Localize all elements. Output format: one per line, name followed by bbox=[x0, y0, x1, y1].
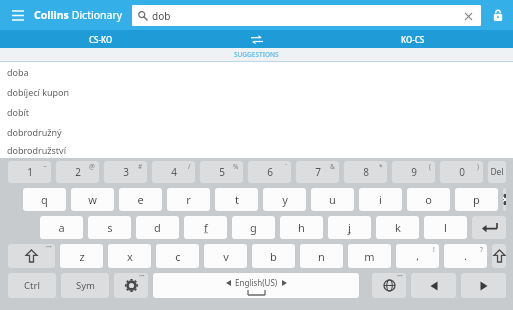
staticText: c bbox=[175, 249, 181, 264]
button[interactable]: Sym bbox=[61, 273, 109, 298]
button[interactable]: CS-KO bbox=[0, 30, 201, 48]
staticText: o bbox=[425, 192, 432, 207]
button[interactable]: Del bbox=[488, 161, 506, 183]
button[interactable]: Swap languages bbox=[201, 30, 312, 48]
staticText: ••• bbox=[397, 273, 403, 280]
button[interactable]: dobít bbox=[0, 102, 513, 122]
staticText: ( bbox=[429, 162, 431, 171]
button[interactable]: o bbox=[407, 188, 450, 211]
button[interactable]: t bbox=[215, 188, 258, 211]
button[interactable]: 2 bbox=[56, 161, 99, 183]
button[interactable]: b bbox=[252, 244, 295, 268]
button[interactable]: 5 bbox=[200, 161, 243, 183]
staticText: f bbox=[204, 220, 208, 235]
button[interactable]: Ctrl bbox=[8, 273, 56, 298]
staticText: Collins bbox=[34, 8, 69, 22]
button[interactable]: 0 bbox=[440, 161, 483, 183]
button[interactable]: c bbox=[156, 244, 199, 268]
button[interactable]: m bbox=[348, 244, 391, 268]
button[interactable]: Right bbox=[461, 273, 506, 298]
staticText: v bbox=[223, 249, 229, 264]
staticText: u bbox=[329, 192, 336, 207]
button[interactable]: 8 bbox=[344, 161, 387, 183]
button[interactable]: e bbox=[119, 188, 162, 211]
staticText: 8 bbox=[363, 165, 369, 179]
button[interactable]: f bbox=[184, 216, 227, 239]
button[interactable]: q bbox=[23, 188, 66, 211]
staticText: p bbox=[473, 192, 480, 207]
button[interactable]: Shift bbox=[8, 244, 55, 268]
staticText: dobrodružný bbox=[7, 126, 62, 138]
button[interactable]: Clear bbox=[461, 9, 475, 23]
staticText: ~ bbox=[43, 162, 47, 171]
staticText: t bbox=[235, 192, 239, 207]
button[interactable]: 3 bbox=[104, 161, 147, 183]
staticText: dobít bbox=[7, 106, 30, 118]
button[interactable]: Backspace bbox=[503, 188, 506, 211]
button[interactable]: u bbox=[311, 188, 354, 211]
button[interactable]: dobrodružný bbox=[0, 122, 513, 142]
button[interactable]: Lock bbox=[489, 6, 507, 24]
button[interactable]: dobrodružství bbox=[0, 142, 513, 158]
button[interactable]: x bbox=[108, 244, 151, 268]
button[interactable]: dob bbox=[132, 5, 481, 26]
button[interactable]: 6 bbox=[248, 161, 291, 183]
staticText: Del bbox=[490, 166, 504, 178]
button[interactable]: s bbox=[88, 216, 131, 239]
button[interactable]: w bbox=[71, 188, 114, 211]
staticText: ••• bbox=[46, 244, 52, 251]
staticText: h bbox=[298, 220, 305, 235]
button[interactable]: Space bbox=[153, 273, 359, 298]
button[interactable]: y bbox=[263, 188, 306, 211]
staticText: # bbox=[138, 162, 143, 171]
staticText: doba bbox=[7, 66, 29, 78]
staticText: d bbox=[154, 220, 161, 235]
staticText: r bbox=[186, 192, 191, 207]
button[interactable]: n bbox=[300, 244, 343, 268]
button[interactable]: Shift bbox=[492, 244, 506, 268]
staticText: e bbox=[137, 192, 144, 207]
button[interactable]: v bbox=[204, 244, 247, 268]
button[interactable]: d bbox=[136, 216, 179, 239]
staticText: dob bbox=[152, 9, 171, 23]
button[interactable]: , bbox=[396, 244, 439, 268]
button[interactable]: 1 bbox=[8, 161, 51, 183]
button[interactable]: l bbox=[424, 216, 467, 239]
button[interactable]: j bbox=[328, 216, 371, 239]
staticText: w bbox=[88, 192, 97, 207]
button[interactable]: . bbox=[444, 244, 487, 268]
staticText: 6 bbox=[267, 165, 273, 179]
staticText: 2 bbox=[75, 165, 81, 179]
staticText: Sym bbox=[76, 279, 95, 292]
staticText: ` bbox=[285, 162, 287, 171]
staticText: ) bbox=[477, 162, 479, 171]
staticText: n bbox=[318, 249, 325, 264]
button[interactable]: 7 bbox=[296, 161, 339, 183]
staticText: / bbox=[188, 162, 191, 171]
button[interactable]: i bbox=[359, 188, 402, 211]
staticText: 4 bbox=[171, 165, 177, 179]
button[interactable]: Language bbox=[372, 273, 406, 298]
button[interactable]: Menu bbox=[8, 5, 28, 25]
button[interactable]: p bbox=[455, 188, 498, 211]
button[interactable]: h bbox=[280, 216, 323, 239]
button[interactable]: k bbox=[376, 216, 419, 239]
staticText: k bbox=[395, 220, 401, 235]
staticText: , bbox=[416, 249, 419, 263]
button[interactable]: 9 bbox=[392, 161, 435, 183]
button[interactable]: r bbox=[167, 188, 210, 211]
staticText: 3 bbox=[123, 165, 129, 179]
staticText: s bbox=[107, 220, 113, 235]
button[interactable]: KO-CS bbox=[312, 30, 513, 48]
button[interactable]: z bbox=[60, 244, 103, 268]
staticText: Ctrl bbox=[24, 279, 40, 292]
button[interactable]: Enter bbox=[472, 216, 506, 239]
button[interactable]: 4 bbox=[152, 161, 195, 183]
button[interactable]: dobíjecí kupon bbox=[0, 82, 513, 102]
button[interactable]: Left bbox=[411, 273, 456, 298]
button[interactable]: Settings bbox=[114, 273, 148, 298]
button[interactable]: g bbox=[232, 216, 275, 239]
button[interactable]: doba bbox=[0, 62, 513, 82]
staticText: a bbox=[58, 220, 65, 235]
button[interactable]: a bbox=[40, 216, 83, 239]
